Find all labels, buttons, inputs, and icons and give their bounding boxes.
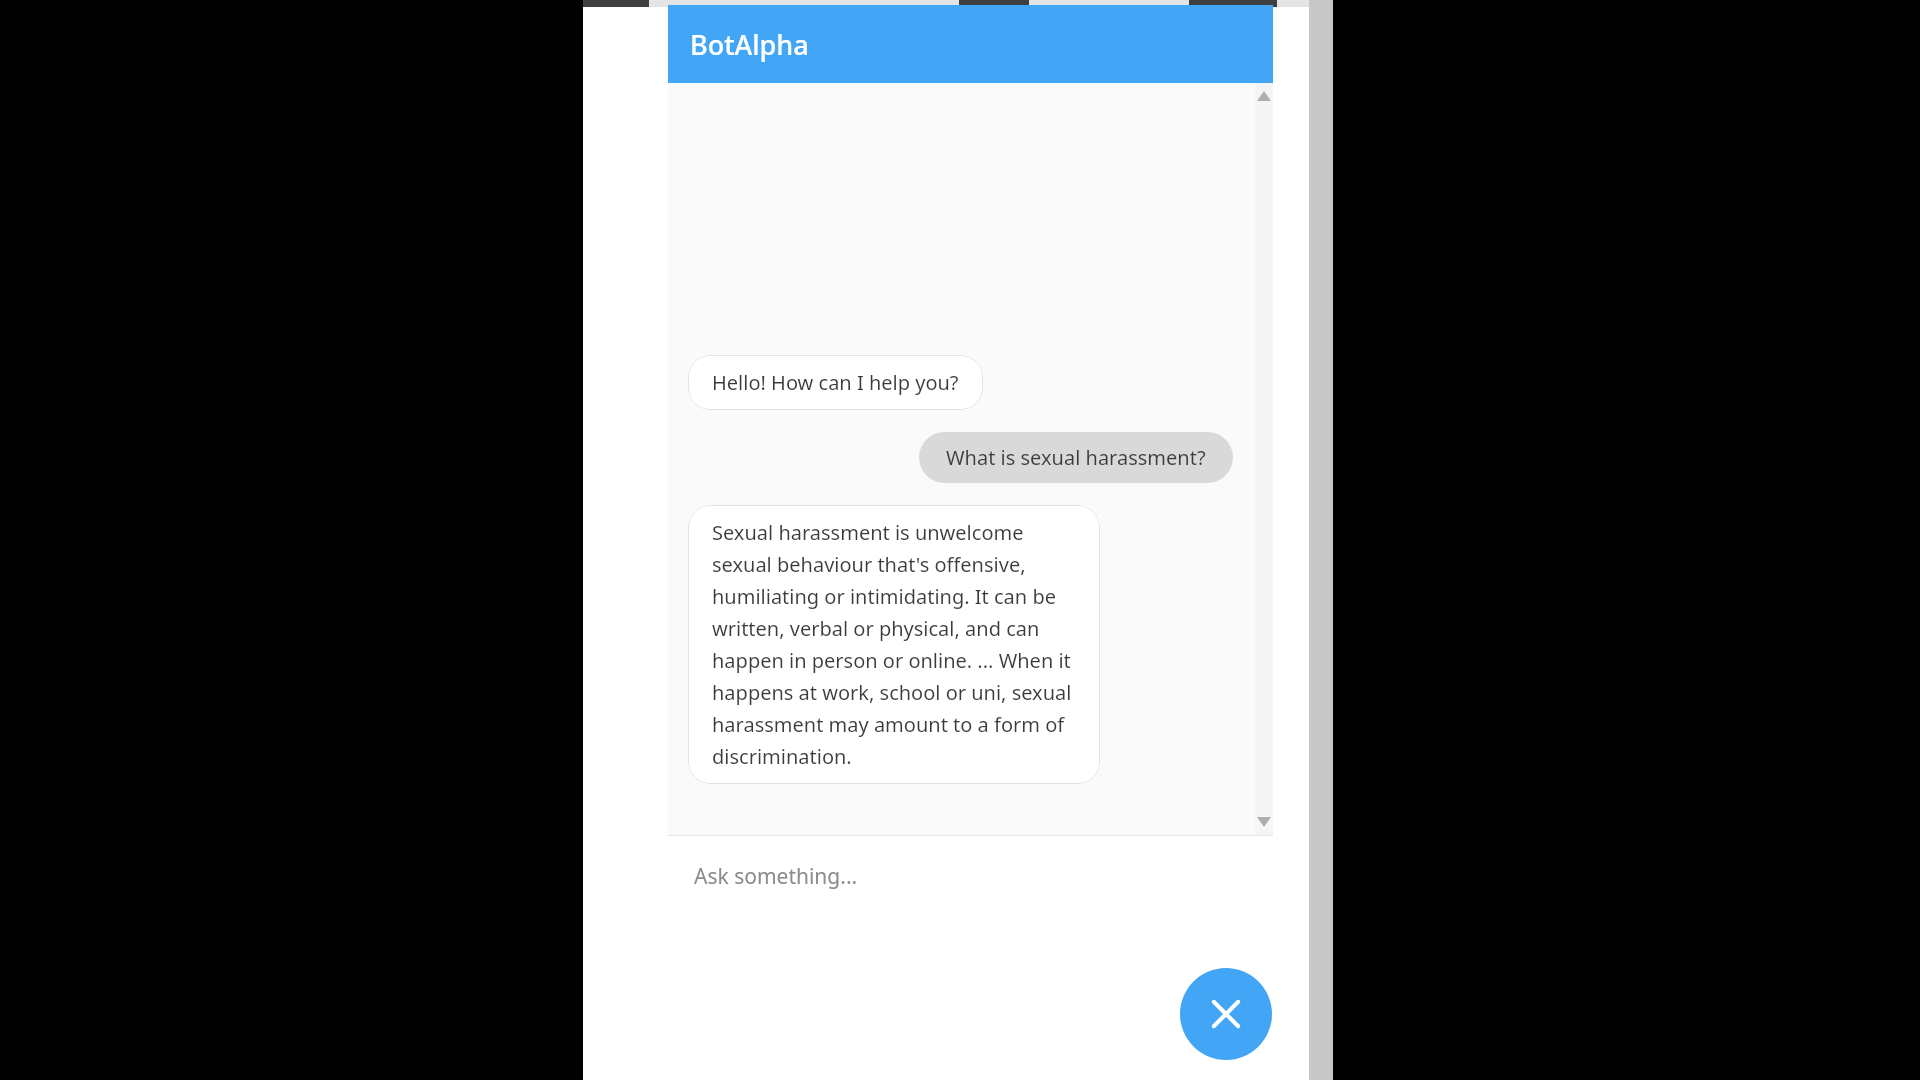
button[interactable]: Ask something... — [668, 836, 1273, 916]
staticText: BotAlpha — [690, 26, 809, 63]
staticText: What is sexual harassment? — [946, 444, 1206, 471]
button[interactable]: Scroll messages — [1255, 83, 1273, 835]
button[interactable]: Close chat — [1180, 968, 1272, 1060]
staticText: Sexual harassment is unwelcome sexual be… — [712, 519, 1076, 770]
button[interactable]: BotAlpha — [668, 5, 1273, 83]
button[interactable]: Sexual harassment is unwelcome sexual be… — [688, 505, 1100, 784]
staticText: Ask something... — [694, 862, 858, 891]
staticText: Hello! How can I help you? — [712, 369, 959, 396]
button[interactable]: Hello! How can I help you? — [688, 355, 983, 410]
button[interactable]: What is sexual harassment? — [919, 432, 1233, 483]
